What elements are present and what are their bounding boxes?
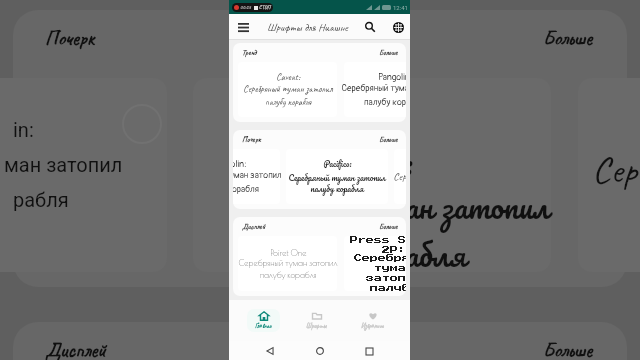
button[interactable]: Search — [360, 17, 380, 37]
staticText: СТОП — [259, 4, 271, 11]
staticText: Почерк — [45, 25, 95, 51]
staticText: Больше — [543, 337, 593, 360]
staticText: Серебряный туман затопил палубу корабля — [235, 258, 341, 280]
staticText: Серебряный туман затопил палубу корабля — [233, 170, 285, 194]
button[interactable]: Press Start 2P: — [344, 236, 406, 291]
staticText: Poiret One — [270, 248, 307, 258]
button[interactable]: Caveat: — [394, 149, 406, 204]
staticText: 00:25 — [240, 4, 251, 11]
staticText: Почерк — [242, 134, 261, 144]
button[interactable]: Pacifico: — [286, 149, 388, 204]
staticText: Дисплей — [242, 221, 266, 231]
staticText: ман затопил — [4, 153, 123, 176]
staticText: Больше — [543, 25, 593, 51]
staticText: Pacifico: — [323, 157, 352, 171]
button[interactable]: Больше — [379, 221, 398, 231]
staticText: Тренд — [242, 47, 257, 57]
staticText: Pangolin — [378, 72, 406, 83]
staticText: Серебряный туман затопил палубу корабля — [350, 254, 406, 291]
button[interactable]: Избранное — [353, 309, 392, 332]
button[interactable]: Poiret One — [238, 236, 337, 291]
staticText: Шрифты для Ниашне — [267, 20, 348, 34]
button[interactable]: Pangolin: — [233, 149, 280, 204]
staticText: Серебряный туман затопил палубу корабля — [387, 169, 406, 198]
staticText: Избранное — [361, 322, 384, 330]
staticText: : — [405, 136, 413, 189]
staticText: Серебряный туман затопил палубу корабля — [338, 83, 406, 107]
staticText: Pangolin: — [233, 159, 247, 170]
button[interactable]: Главная — [247, 309, 280, 332]
button[interactable]: Back — [261, 342, 279, 360]
staticText: Caveat: — [276, 71, 300, 83]
staticText: Серебряный туман затопил палубу корабля — [285, 171, 389, 196]
button[interactable]: Home — [311, 342, 329, 360]
button[interactable]: Language — [388, 17, 408, 37]
staticText: Дисплей — [45, 337, 107, 360]
staticText: Шрифты — [306, 322, 327, 330]
staticText: 12:41 — [393, 4, 408, 11]
staticText: Серебряный туман затопил палубу корабля — [240, 83, 336, 108]
button[interactable]: Caveat: — [238, 62, 337, 117]
button[interactable]: Pangolin — [344, 62, 406, 117]
button[interactable]: Menu — [232, 16, 254, 38]
staticText: in: — [13, 118, 34, 141]
button[interactable]: Больше — [379, 47, 398, 57]
staticText: рабля — [13, 188, 69, 211]
button[interactable]: Recent apps — [360, 342, 378, 360]
button[interactable]: Шрифты — [298, 309, 335, 332]
staticText: Главная — [255, 322, 272, 330]
staticText: Press Start 2P: — [350, 236, 406, 254]
staticText: Сер — [592, 146, 638, 194]
staticText: абля — [405, 228, 467, 281]
staticText: ан затопил — [405, 180, 550, 233]
button[interactable]: Больше — [379, 134, 398, 144]
